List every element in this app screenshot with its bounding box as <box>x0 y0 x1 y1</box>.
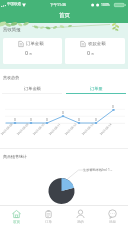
staticText: 0 <box>87 49 91 56</box>
staticText: 订单金额 <box>26 41 44 47</box>
other: 首页 <box>12 210 21 218</box>
button[interactable]: 消息 <box>96 205 128 228</box>
staticText: 订单 <box>45 220 52 224</box>
staticText: 收款金额 <box>88 41 106 47</box>
staticText: 消息 <box>109 220 116 224</box>
staticText: 0 <box>14 118 16 122</box>
staticText: 订单金额 <box>24 86 41 91</box>
button[interactable]: 订单量 <box>64 86 128 94</box>
button[interactable]: 收款金额 <box>65 38 125 64</box>
button[interactable]: 订单金额 <box>3 38 62 64</box>
staticText: 2023-08-09 <box>16 122 30 136</box>
staticText: 中国联通 <box>7 2 21 6</box>
staticText: 0 <box>95 118 97 122</box>
staticText: 元 <box>91 52 95 56</box>
staticText: 下午11:36 <box>50 2 66 7</box>
staticText: 0 <box>46 118 48 122</box>
staticText: 我的 <box>77 220 84 224</box>
staticText: 2023-08-11 <box>48 122 62 136</box>
staticText: 营收简报 <box>3 27 21 33</box>
button[interactable]: 订单金额 <box>0 86 64 94</box>
staticText: 订单量 <box>90 86 103 91</box>
staticText: 营收趋势 <box>3 75 19 80</box>
staticText: 0 <box>30 118 32 122</box>
staticText: 首页 <box>59 12 70 19</box>
staticText: 2023-08-13 <box>81 122 95 136</box>
staticText: 0 <box>62 111 64 115</box>
other: 消息 <box>108 210 117 218</box>
staticText: 生炒酱鸭米线(份) 1... <box>83 168 113 172</box>
staticText: 0 <box>25 49 29 56</box>
staticText: 2023-08-10 <box>32 122 46 136</box>
staticText: 元 <box>29 52 33 56</box>
other: 我的 <box>76 210 85 218</box>
staticText: 2023-08-14 <box>99 122 113 136</box>
button[interactable]: 订单 <box>32 205 64 228</box>
button[interactable]: 我的 <box>64 205 96 228</box>
staticText: 0 <box>112 105 114 109</box>
staticText: 2023-08-08 <box>0 122 14 136</box>
staticText: 首页 <box>13 220 20 224</box>
staticText: 商品销售统计 <box>3 154 27 159</box>
button[interactable]: 首页 <box>0 205 32 228</box>
other: 订单 <box>44 210 53 218</box>
staticText: 2023-08-12 <box>64 122 78 136</box>
staticText: 0 <box>78 118 80 122</box>
staticText: 100% <box>101 2 110 7</box>
